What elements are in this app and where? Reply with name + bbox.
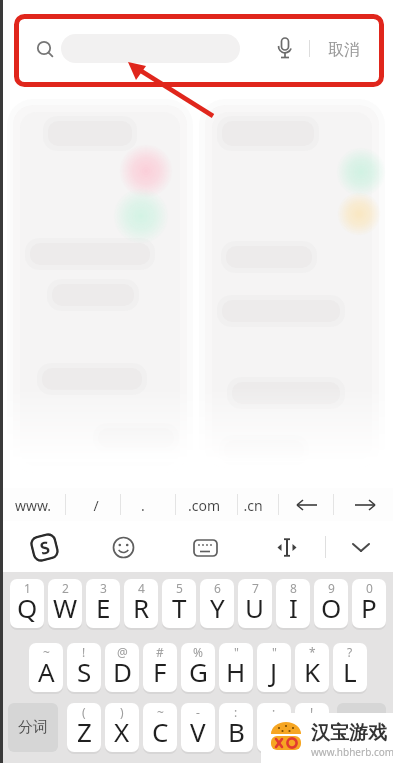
staticText: M xyxy=(300,714,324,749)
button[interactable]: 6 xyxy=(200,579,234,628)
staticText: L xyxy=(343,654,357,689)
staticText: ~ xyxy=(157,704,164,720)
button[interactable]: " xyxy=(219,643,253,692)
button[interactable]: 分词 xyxy=(8,703,58,752)
staticText: ) xyxy=(120,704,124,720)
button[interactable]: ? xyxy=(333,643,367,692)
staticText: Q xyxy=(17,590,38,625)
button[interactable]: ! xyxy=(67,643,101,692)
button[interactable]: ( xyxy=(67,703,101,752)
button[interactable] xyxy=(351,496,379,514)
staticText: S xyxy=(37,535,53,560)
staticText: 8 xyxy=(290,580,297,596)
button[interactable]: 8 xyxy=(276,579,310,628)
staticText: 1 xyxy=(24,580,31,596)
staticText: V xyxy=(190,714,206,749)
button[interactable]: 2 xyxy=(48,579,82,628)
staticText: ! xyxy=(310,704,314,720)
staticText: Z xyxy=(77,714,92,749)
staticText: " xyxy=(234,644,239,660)
staticText: ? xyxy=(347,644,353,660)
button[interactable]: 9 xyxy=(314,579,348,628)
staticText: ~ xyxy=(43,644,50,660)
staticText: P xyxy=(361,590,377,625)
staticText: W xyxy=(53,590,78,625)
staticText: O xyxy=(321,590,342,625)
button[interactable]: . xyxy=(113,496,173,515)
staticText: U xyxy=(245,590,265,625)
staticText: S xyxy=(77,654,92,689)
staticText: E xyxy=(96,590,111,625)
staticText: 分词 xyxy=(18,718,48,737)
button[interactable]: " xyxy=(257,643,291,692)
staticText: F xyxy=(153,654,167,689)
button[interactable]: 5 xyxy=(162,579,196,628)
staticText: % xyxy=(193,644,203,660)
staticText: R xyxy=(133,590,150,625)
staticText: T xyxy=(172,590,187,625)
staticText: 7 xyxy=(252,580,259,596)
button[interactable] xyxy=(350,540,372,554)
staticText: Y xyxy=(210,590,225,625)
button[interactable]: ) xyxy=(105,703,139,752)
button[interactable]: # xyxy=(143,643,177,692)
staticText: ! xyxy=(82,644,86,660)
button[interactable]: % xyxy=(181,643,215,692)
button[interactable]: : xyxy=(219,703,253,752)
button[interactable] xyxy=(275,537,299,558)
staticText: ( xyxy=(82,704,86,720)
staticText: : xyxy=(234,704,238,720)
staticText: 6 xyxy=(214,580,221,596)
button[interactable]: ; xyxy=(257,703,291,752)
button[interactable] xyxy=(293,496,321,514)
button[interactable]: .com xyxy=(174,496,234,515)
button[interactable]: 7 xyxy=(238,579,272,628)
staticText: B xyxy=(228,714,245,749)
staticText: C xyxy=(152,714,169,749)
staticText: 3 xyxy=(100,580,107,596)
button[interactable] xyxy=(275,36,295,62)
staticText: H xyxy=(226,654,246,689)
button[interactable] xyxy=(61,34,240,63)
staticText: " xyxy=(272,644,277,660)
staticText: - xyxy=(196,704,200,720)
button[interactable]: 0 xyxy=(352,579,386,628)
button[interactable] xyxy=(112,536,135,559)
staticText: ; xyxy=(272,704,276,720)
button[interactable]: 1 xyxy=(10,579,44,628)
button[interactable]: 3 xyxy=(86,579,120,628)
staticText: * xyxy=(309,644,316,660)
button[interactable]: ~ xyxy=(29,643,63,692)
staticText: www.hbherb.com xyxy=(311,745,393,759)
staticText: J xyxy=(270,654,278,689)
button[interactable]: - xyxy=(181,703,215,752)
staticText: I xyxy=(289,590,298,625)
staticText: 2 xyxy=(62,580,69,596)
staticText: # xyxy=(156,644,164,660)
button[interactable]: ! xyxy=(295,703,329,752)
button[interactable]: * xyxy=(295,643,329,692)
staticText: 9 xyxy=(328,580,335,596)
staticText: 4 xyxy=(138,580,145,596)
button[interactable] xyxy=(337,703,386,752)
staticText: @ xyxy=(117,644,128,660)
staticText: 5 xyxy=(176,580,183,596)
button[interactable]: ~ xyxy=(143,703,177,752)
staticText: 汉宝游戏 xyxy=(311,721,393,745)
button[interactable]: S xyxy=(28,531,61,564)
staticText: X xyxy=(114,714,130,749)
staticText: N xyxy=(264,714,284,749)
button[interactable]: / xyxy=(66,496,126,515)
staticText: K xyxy=(304,654,321,689)
button[interactable]: .cn xyxy=(223,496,283,515)
button[interactable]: 4 xyxy=(124,579,158,628)
button[interactable]: 取消 xyxy=(322,40,366,60)
button[interactable]: www. xyxy=(3,496,63,515)
staticText: D xyxy=(113,654,132,689)
staticText: G xyxy=(189,654,208,689)
button[interactable] xyxy=(193,539,218,557)
staticText: A xyxy=(38,654,55,689)
button[interactable]: @ xyxy=(105,643,139,692)
staticText: 0 xyxy=(366,580,373,596)
